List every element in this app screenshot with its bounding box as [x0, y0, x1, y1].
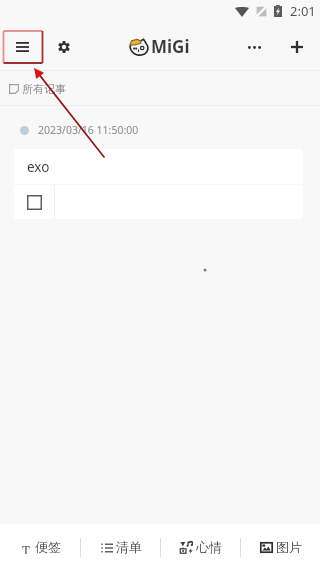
button[interactable]	[14, 185, 303, 219]
staticText: 清单	[116, 539, 142, 555]
staticText: 所有记事	[22, 82, 66, 96]
button[interactable]: 所有记事	[0, 76, 74, 102]
button[interactable]: More options	[240, 33, 268, 61]
staticText: 便签	[35, 539, 61, 555]
staticText: 图片	[276, 539, 302, 555]
button[interactable]: T	[0, 524, 80, 570]
button[interactable]: 心情	[161, 524, 240, 570]
button[interactable]: Menu	[4, 31, 40, 62]
button[interactable]: exo	[14, 149, 303, 184]
staticText: T	[22, 541, 30, 554]
staticText: exo	[27, 158, 50, 176]
staticText: MiGi	[151, 35, 190, 58]
staticText: 2023/03/16 11:50:00	[38, 123, 139, 137]
button[interactable]: 图片	[241, 524, 320, 570]
staticText: 心情	[196, 539, 222, 555]
button[interactable]: Settings	[51, 34, 77, 60]
button[interactable]: 清单	[81, 524, 160, 570]
staticText: 2:01	[290, 2, 316, 20]
button[interactable]: Add	[283, 33, 311, 61]
